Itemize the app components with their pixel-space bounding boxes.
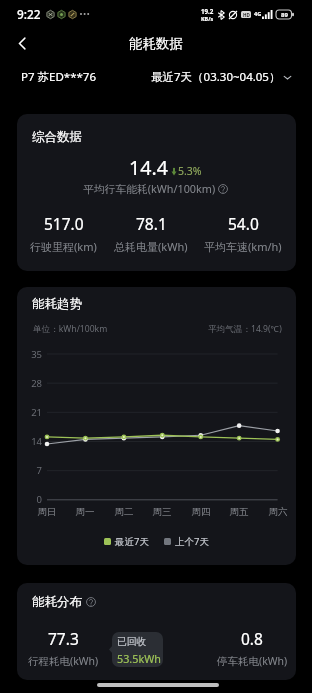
staticText: 54.0 — [228, 213, 259, 234]
staticText: 平均行车能耗(kWh/100km) — [83, 181, 216, 196]
staticText: 周三 — [142, 506, 182, 518]
staticText: 7 — [17, 464, 42, 477]
staticText: 最近7天 — [115, 535, 149, 548]
staticText: 35 — [17, 348, 42, 361]
staticText: 78.1 — [136, 213, 167, 234]
staticText: 能耗分布 — [32, 594, 82, 610]
staticText: 14.4 — [129, 154, 168, 181]
staticText: 已回收 — [117, 636, 147, 648]
staticText: 周五 — [219, 506, 259, 518]
button[interactable]: Back — [8, 29, 36, 57]
staticText: 0 — [17, 493, 42, 506]
staticText: 周一 — [65, 506, 105, 518]
staticText: 停车耗电(kWh) — [217, 654, 288, 668]
staticText: 行程耗电(kWh) — [28, 654, 99, 668]
staticText: 周六 — [258, 506, 296, 518]
staticText: 周日 — [27, 506, 67, 518]
staticText: 517.0 — [44, 213, 84, 234]
staticText: 综合数据 — [32, 129, 82, 145]
staticText: 能耗趋势 — [32, 296, 82, 312]
button[interactable]: P7 苏ED***76 — [21, 69, 96, 85]
staticText: 14 — [17, 435, 42, 448]
staticText: 53.5kWh — [117, 651, 161, 666]
staticText: 最近7天（03.30~04.05） — [151, 69, 281, 85]
staticText: HD — [243, 12, 250, 18]
staticText: 平均气温：14.9(℃) — [208, 323, 282, 335]
staticText: KB/s — [201, 15, 214, 22]
staticText: 周四 — [181, 506, 221, 518]
staticText: 89 — [281, 11, 288, 19]
staticText: 5.3% — [178, 164, 202, 178]
staticText: 21 — [17, 406, 42, 419]
staticText: 总耗电量(kWh) — [114, 239, 188, 254]
staticText: 19.2 — [201, 7, 214, 15]
staticText: 4G — [254, 10, 262, 18]
staticText: 上个7天 — [175, 535, 209, 548]
staticText: 单位：kWh/100km — [33, 323, 108, 335]
staticText: 28 — [17, 377, 42, 390]
button[interactable]: 最近7天（03.30~04.05） — [151, 69, 293, 85]
staticText: 平均车速(km/h) — [204, 239, 282, 254]
staticText: 行驶里程(km) — [30, 239, 97, 254]
staticText: 0.8 — [241, 628, 263, 649]
staticText: 9:22 — [17, 6, 41, 22]
staticText: 周二 — [104, 506, 144, 518]
staticText: 77.3 — [48, 628, 79, 649]
staticText: 能耗数据 — [129, 35, 183, 52]
